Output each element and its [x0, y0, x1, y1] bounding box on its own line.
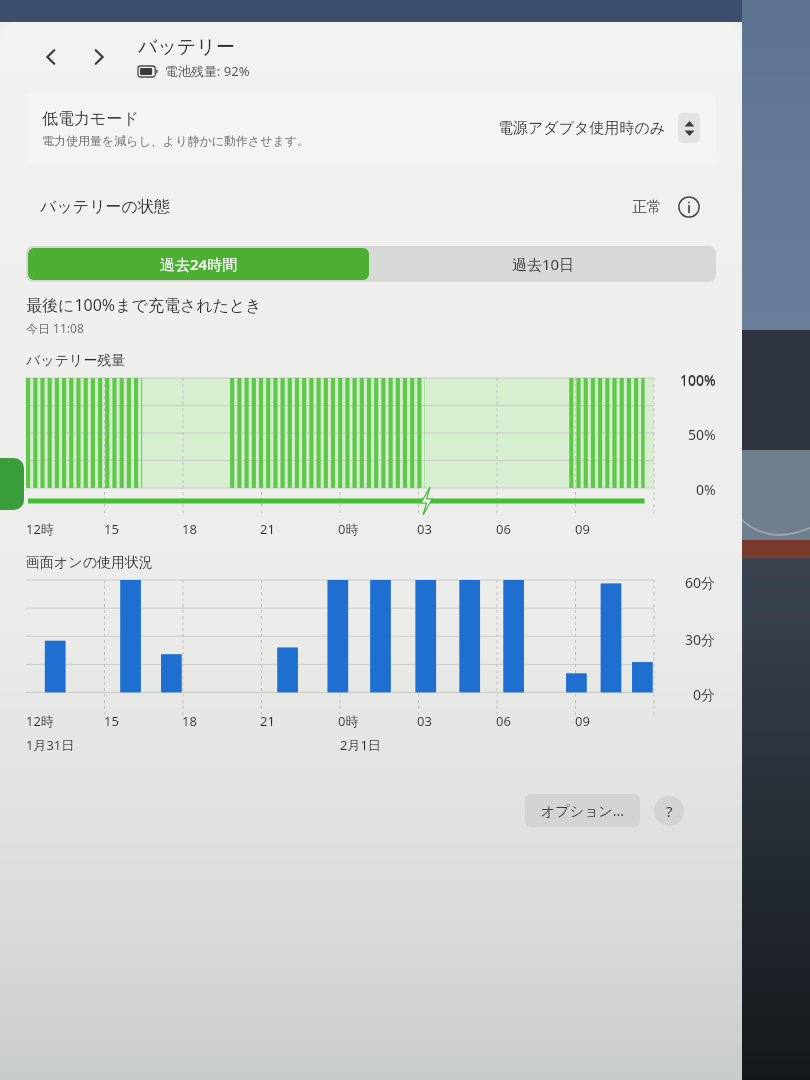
staticText: 03: [417, 712, 432, 730]
button[interactable]: 過去10日: [371, 246, 716, 282]
staticText: 電池残量: 92%: [165, 62, 250, 80]
staticText: 15: [104, 712, 119, 730]
staticText: 15: [104, 520, 119, 538]
button[interactable]: Help: [654, 796, 684, 826]
staticText: ?: [666, 801, 673, 821]
staticText: 画面オンの使用状況: [26, 554, 153, 572]
staticText: 03: [417, 520, 432, 538]
staticText: 今日 11:08: [26, 320, 84, 336]
staticText: 60分: [685, 573, 716, 592]
staticText: オプション...: [541, 801, 624, 820]
staticText: 09: [575, 520, 590, 538]
staticText: 100%: [680, 371, 716, 390]
staticText: 最後に100%まで充電されたとき: [26, 294, 262, 316]
staticText: 0分: [693, 685, 716, 704]
button[interactable]: オプション...: [525, 794, 640, 827]
staticText: 低電力モード: [42, 109, 139, 129]
staticText: 18: [182, 520, 197, 538]
staticText: 正常: [632, 198, 662, 217]
staticText: 06: [496, 712, 511, 730]
staticText: 12時: [26, 712, 54, 730]
staticText: バッテリー: [138, 35, 235, 59]
staticText: 0時: [338, 712, 359, 730]
staticText: 0時: [338, 520, 359, 538]
staticText: 過去10日: [512, 254, 575, 274]
staticText: 09: [575, 712, 590, 730]
button[interactable]: 低電力モード: [26, 92, 716, 164]
staticText: バッテリーの状態: [40, 197, 632, 217]
staticText: バッテリー残量: [26, 352, 126, 370]
staticText: 50%: [688, 425, 716, 444]
staticText: 1月31日: [26, 736, 75, 754]
staticText: 21: [260, 520, 275, 538]
button[interactable]: バッテリーの状態: [26, 182, 716, 232]
staticText: 100%: [680, 370, 716, 389]
staticText: 過去24時間: [160, 254, 238, 274]
staticText: 06: [496, 520, 511, 538]
staticText: 0%: [696, 480, 716, 499]
button[interactable]: Change low power mode: [678, 113, 700, 143]
staticText: 電力使用量を減らし、より静かに動作させます。: [42, 133, 310, 148]
staticText: 21: [260, 712, 275, 730]
staticText: 12時: [26, 520, 54, 538]
staticText: 電源アダプタ使用時のみ: [498, 119, 666, 138]
button[interactable]: Back: [34, 40, 68, 74]
staticText: 18: [182, 712, 197, 730]
button[interactable]: Forward: [82, 40, 116, 74]
button[interactable]: Battery health info: [676, 194, 702, 220]
button[interactable]: 過去24時間: [28, 248, 369, 280]
staticText: 30分: [685, 630, 716, 649]
staticText: 2月1日: [340, 736, 381, 754]
